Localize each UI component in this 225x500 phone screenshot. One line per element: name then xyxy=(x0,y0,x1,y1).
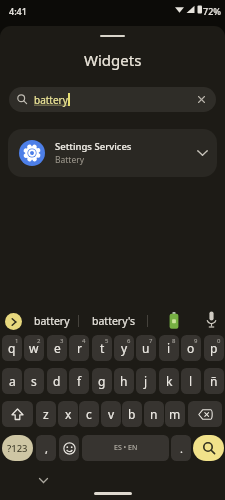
staticText: f xyxy=(77,373,82,389)
staticText: 2 xyxy=(37,337,41,345)
button[interactable]: g xyxy=(92,368,112,394)
staticText: v xyxy=(108,406,115,422)
button[interactable] xyxy=(5,313,22,330)
button[interactable]: v xyxy=(101,401,121,427)
staticText: 5 xyxy=(105,337,109,345)
button[interactable]: t xyxy=(92,335,112,361)
button[interactable] xyxy=(169,312,179,329)
button[interactable]: b xyxy=(122,401,142,427)
button[interactable]: ES • EN xyxy=(82,435,169,461)
staticText: o xyxy=(187,340,195,356)
staticText: s xyxy=(31,373,37,389)
staticText: h xyxy=(120,373,128,389)
button[interactable]: battery's xyxy=(86,310,142,331)
staticText: t xyxy=(100,340,105,356)
staticText: r xyxy=(77,340,82,356)
staticText: 4 xyxy=(82,337,86,345)
staticText: y xyxy=(121,340,128,356)
button[interactable]: l xyxy=(181,368,201,394)
button[interactable] xyxy=(2,401,33,427)
staticText: Settings Services xyxy=(55,140,132,153)
staticText: 6 xyxy=(127,337,131,345)
button[interactable]: f xyxy=(69,368,89,394)
button[interactable]: q xyxy=(2,335,22,361)
button[interactable] xyxy=(193,435,224,461)
button[interactable]: c xyxy=(79,401,99,427)
staticText: i xyxy=(167,340,171,356)
staticText: 1 xyxy=(15,337,19,345)
button[interactable] xyxy=(59,435,79,461)
staticText: Battery xyxy=(55,154,85,166)
staticText: k xyxy=(166,373,173,389)
staticText: x xyxy=(65,406,72,422)
button[interactable]: s xyxy=(24,368,44,394)
staticText: p xyxy=(210,340,218,356)
staticText: battery's xyxy=(92,314,136,328)
button[interactable]: n xyxy=(144,401,164,427)
button[interactable]: battery xyxy=(30,310,74,331)
staticText: l xyxy=(189,373,193,389)
button[interactable]: i xyxy=(159,335,179,361)
staticText: q xyxy=(8,340,16,356)
staticText: , xyxy=(45,441,48,456)
staticText: c xyxy=(86,406,92,422)
staticText: 9 xyxy=(194,337,198,345)
button[interactable]: z xyxy=(36,401,56,427)
button[interactable] xyxy=(188,401,222,427)
button[interactable]: x xyxy=(58,401,78,427)
button[interactable]: . xyxy=(171,435,191,461)
staticText: ñ xyxy=(210,373,218,389)
button[interactable]: ?123 xyxy=(2,435,33,461)
button[interactable]: p xyxy=(204,335,224,361)
button[interactable]: Settings Services xyxy=(8,129,217,177)
staticText: z xyxy=(43,406,49,422)
staticText: e xyxy=(54,340,61,356)
staticText: 72% xyxy=(203,5,221,17)
staticText: d xyxy=(53,373,61,389)
staticText: 8 xyxy=(172,337,176,345)
staticText: b xyxy=(128,406,136,422)
button[interactable]: j xyxy=(136,368,156,394)
button[interactable]: r xyxy=(69,335,89,361)
staticText: j xyxy=(144,373,148,389)
button[interactable]: battery xyxy=(9,87,216,112)
staticText: w xyxy=(29,340,39,356)
staticText: battery xyxy=(34,93,68,107)
staticText: 7 xyxy=(149,337,153,345)
staticText: 0 xyxy=(217,337,221,345)
staticText: a xyxy=(9,373,16,389)
button[interactable]: u xyxy=(136,335,156,361)
staticText: ?123 xyxy=(7,442,28,455)
button[interactable]: y xyxy=(114,335,134,361)
staticText: 3 xyxy=(60,337,64,345)
button[interactable]: h xyxy=(114,368,134,394)
button[interactable]: ñ xyxy=(204,368,224,394)
staticText: m xyxy=(169,406,181,422)
staticText: . xyxy=(180,441,183,456)
staticText: u xyxy=(142,340,150,356)
button[interactable]: m xyxy=(165,401,185,427)
button[interactable]: k xyxy=(159,368,179,394)
button[interactable]: d xyxy=(47,368,67,394)
button[interactable]: a xyxy=(2,368,22,394)
button[interactable]: e xyxy=(47,335,67,361)
button[interactable]: o xyxy=(181,335,201,361)
staticText: ES • EN xyxy=(114,443,138,453)
button[interactable] xyxy=(39,478,48,483)
staticText: 4:41 xyxy=(9,5,27,17)
button[interactable] xyxy=(205,311,218,329)
button[interactable]: , xyxy=(36,435,56,461)
staticText: battery xyxy=(34,314,70,328)
staticText: Widgets xyxy=(84,50,142,70)
button[interactable]: w xyxy=(24,335,44,361)
staticText: g xyxy=(98,373,106,389)
staticText: n xyxy=(150,406,158,422)
